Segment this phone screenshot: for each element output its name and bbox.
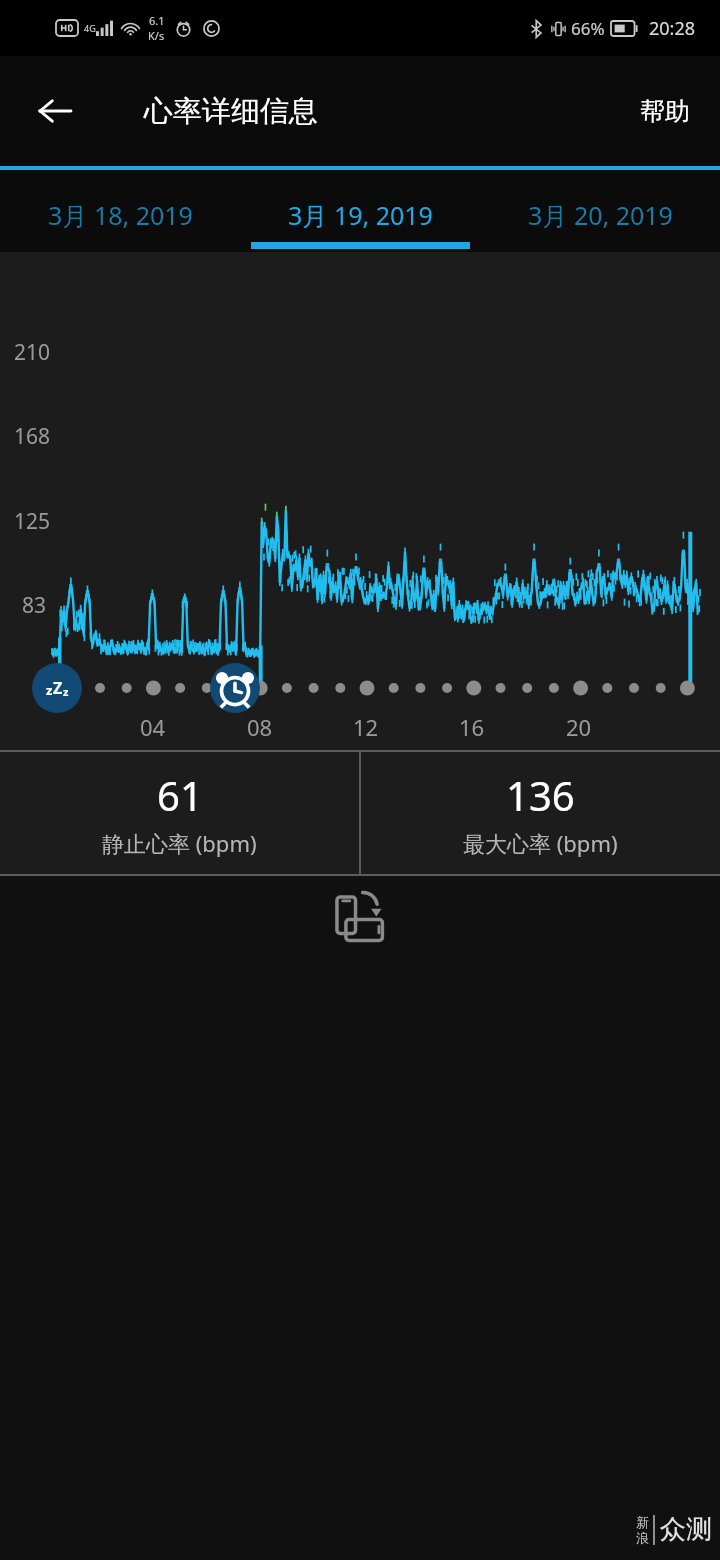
staticText: z [63, 684, 69, 699]
staticText: 20 [566, 712, 592, 742]
staticText: 12 [353, 712, 379, 742]
staticText: 浪 [636, 1530, 649, 1546]
staticText: 08 [247, 712, 273, 742]
button[interactable]: 3月 20, 2019 [480, 170, 720, 252]
staticText: 静止心率 (bpm) [102, 828, 257, 858]
staticText: K/s [148, 28, 165, 43]
button[interactable]: 3月 18, 2019 [0, 170, 240, 252]
staticText: 83 [22, 591, 47, 620]
staticText: 61 [157, 768, 203, 822]
button[interactable]: Back [24, 80, 86, 142]
button[interactable]: Rotate device [324, 886, 396, 958]
staticText: 帮助 [640, 96, 690, 127]
staticText: 16 [459, 712, 485, 742]
staticText: 04 [140, 712, 166, 742]
staticText: 3月 18, 2019 [48, 198, 193, 232]
staticText: 136 [506, 768, 575, 822]
staticText: 最大心率 (bpm) [463, 828, 618, 858]
staticText: 心率详细信息 [144, 93, 318, 130]
button[interactable]: 3月 19, 2019 [240, 170, 480, 252]
staticText: 3月 20, 2019 [528, 198, 673, 232]
staticText: 125 [14, 507, 51, 536]
staticText: 168 [14, 422, 51, 451]
staticText: z [46, 681, 53, 699]
button[interactable]: Sleep start [32, 663, 82, 713]
button[interactable]: 61 [0, 752, 359, 874]
staticText: 66% [571, 17, 605, 40]
staticText: 4G [84, 22, 96, 34]
staticText: 3月 19, 2019 [288, 198, 433, 232]
staticText: 210 [14, 338, 51, 367]
button[interactable]: Wake alarm [210, 663, 260, 713]
button[interactable]: 帮助 [628, 82, 702, 141]
staticText: 新 [636, 1514, 649, 1530]
staticText: 6.1 [149, 13, 165, 28]
staticText: 20:28 [649, 16, 696, 41]
staticText: 众测 [660, 1513, 712, 1546]
button[interactable]: 136 [361, 752, 720, 874]
staticText: Z [53, 677, 63, 699]
